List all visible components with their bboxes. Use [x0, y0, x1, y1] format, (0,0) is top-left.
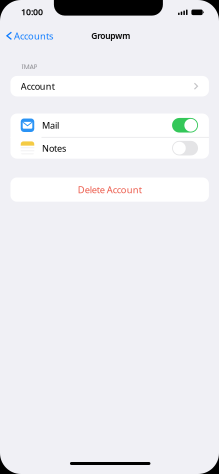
staticText: Notes	[42, 142, 66, 154]
button[interactable]: Accounts	[0, 28, 56, 44]
button[interactable]: Notes	[10, 138, 209, 159]
staticText: Groupwm	[91, 30, 130, 41]
staticText: 10:00	[21, 6, 43, 18]
button[interactable]: Mail	[10, 113, 209, 137]
button[interactable]: Account	[10, 76, 209, 96]
staticText: IMAP	[21, 62, 37, 71]
button[interactable]: Delete Account	[10, 177, 209, 202]
staticText: Accounts	[14, 30, 53, 42]
staticText: Delete Account	[78, 183, 142, 196]
staticText: Mail	[42, 119, 59, 131]
staticText: Account	[21, 80, 55, 92]
